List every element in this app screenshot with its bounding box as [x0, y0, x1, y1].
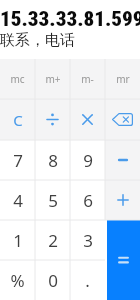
button[interactable]: 6	[70, 180, 105, 220]
staticText: 6	[83, 189, 93, 212]
button[interactable]: 1	[0, 220, 35, 260]
staticText: 1	[13, 229, 23, 252]
button[interactable]: 0	[35, 260, 70, 300]
staticText: .	[85, 269, 90, 292]
staticText: 15.33.33.81.599	[0, 7, 140, 32]
button[interactable]: 9	[70, 140, 105, 180]
button[interactable]: %	[0, 260, 35, 300]
button[interactable]: 5	[35, 180, 70, 220]
button[interactable]: 8	[35, 140, 70, 180]
button[interactable]: Equals	[107, 220, 140, 300]
button[interactable]: 4	[0, 180, 35, 220]
button[interactable]: Multiply	[70, 99, 105, 140]
staticText: 2	[48, 229, 58, 252]
staticText: m+	[45, 72, 61, 86]
staticText: 联系，电话	[0, 31, 75, 50]
staticText: 3	[83, 229, 93, 252]
staticText: m-	[81, 72, 94, 86]
button[interactable]: Divide	[35, 99, 70, 140]
button[interactable]: m-	[70, 59, 105, 99]
button[interactable]: Minus	[105, 140, 140, 180]
staticText: mr	[116, 72, 130, 86]
button[interactable]: 7	[0, 140, 35, 180]
button[interactable]: m+	[35, 59, 70, 99]
button[interactable]: Backspace	[105, 99, 140, 140]
staticText: 9	[83, 149, 93, 172]
button[interactable]: mr	[105, 59, 140, 99]
staticText: %	[10, 269, 25, 292]
button[interactable]: .	[70, 260, 105, 300]
staticText: 4	[13, 189, 23, 212]
button[interactable]: mc	[0, 59, 35, 99]
staticText: mc	[10, 72, 25, 86]
staticText: 8	[48, 149, 58, 172]
button[interactable]: C	[0, 99, 35, 140]
button[interactable]: 3	[70, 220, 105, 260]
staticText: 5	[48, 189, 58, 212]
staticText: C	[13, 110, 23, 130]
button[interactable]: 2	[35, 220, 70, 260]
staticText: 0	[48, 269, 58, 292]
button[interactable]: Plus	[105, 180, 140, 220]
staticText: 7	[13, 149, 23, 172]
